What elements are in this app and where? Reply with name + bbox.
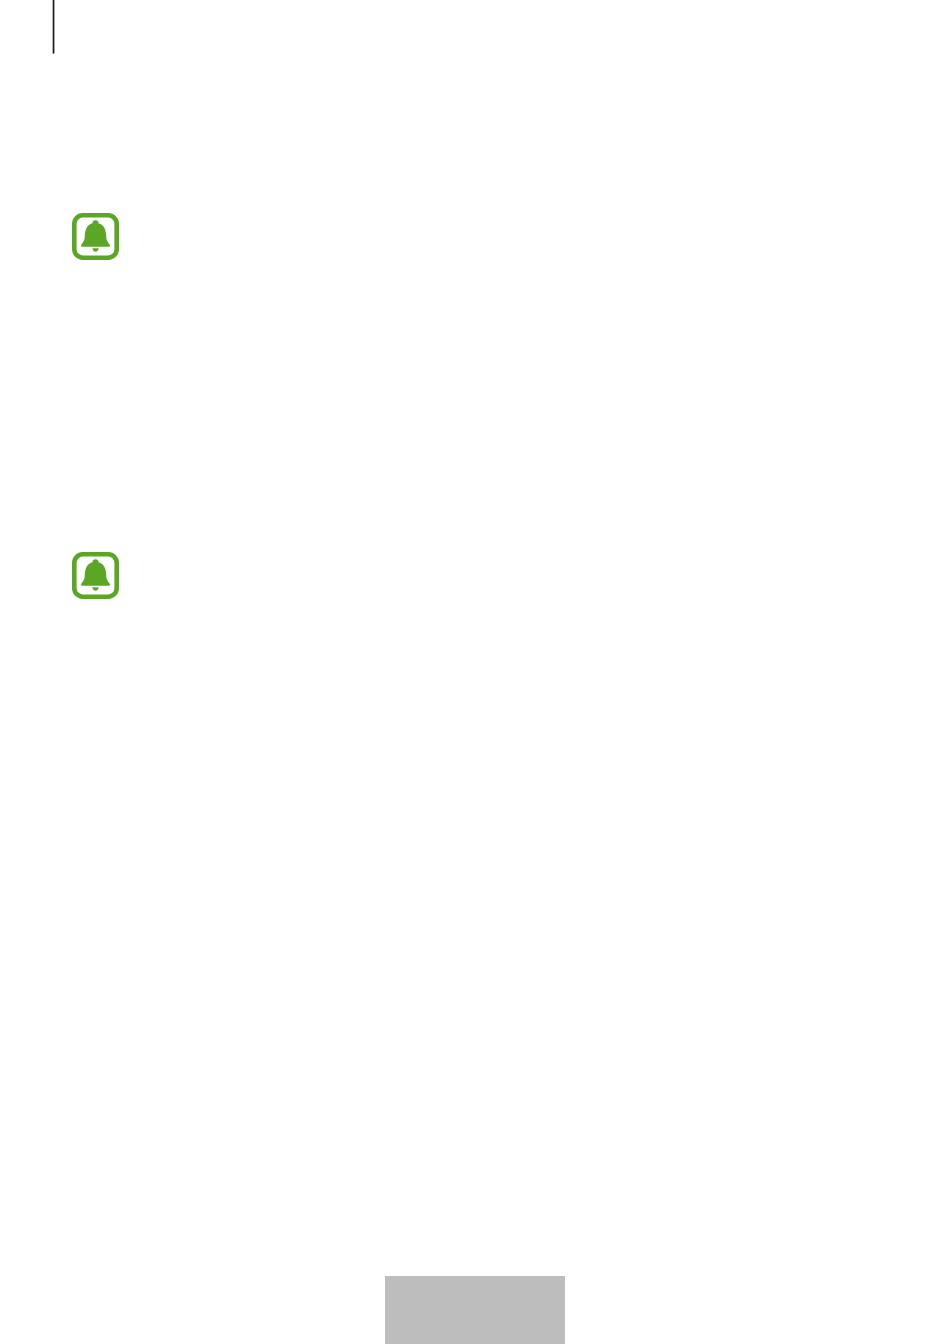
button[interactable]: Notification channel <box>0 58 950 397</box>
button[interactable]: Notification channel <box>0 397 950 736</box>
